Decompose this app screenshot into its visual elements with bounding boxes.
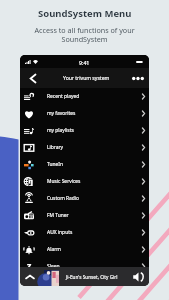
button[interactable]: Back xyxy=(24,69,42,87)
button[interactable]: Recent played xyxy=(20,88,149,105)
staticText: Custom Radio xyxy=(47,195,80,202)
staticText: my playlists xyxy=(47,127,74,134)
button[interactable]: Alarm xyxy=(20,241,149,258)
staticText: Recent played xyxy=(47,93,80,100)
staticText: SoundSystem Menu xyxy=(38,7,132,20)
staticText: Alarm xyxy=(47,246,61,253)
button[interactable]: More options xyxy=(129,69,147,87)
staticText: Library xyxy=(47,144,64,151)
button[interactable]: Expand player xyxy=(20,267,149,286)
button[interactable]: Expand player xyxy=(24,271,36,283)
staticText: Sleep xyxy=(47,263,60,270)
staticText: my favorites xyxy=(47,110,76,117)
button[interactable]: my playlists xyxy=(20,122,149,139)
button[interactable]: Music Services xyxy=(20,173,149,190)
staticText: Music Services xyxy=(47,178,81,185)
staticText: Ji-Eun's Sunset, City Girl xyxy=(66,274,118,280)
button[interactable]: my favorites xyxy=(20,105,149,122)
staticText: TuneIn xyxy=(47,161,63,168)
button[interactable]: FM Tuner xyxy=(20,207,149,224)
staticText: FM Tuner xyxy=(47,212,69,219)
button[interactable]: Custom Radio xyxy=(20,190,149,207)
button[interactable]: AUX inputs xyxy=(20,224,149,241)
staticText: AUX inputs xyxy=(47,229,73,236)
button[interactable]: Volume xyxy=(130,269,146,285)
staticText: Your trivum system xyxy=(63,75,110,82)
staticText: Access to all functions of your SoundSys… xyxy=(34,25,135,44)
button[interactable]: Z xyxy=(20,258,149,275)
staticText: Z xyxy=(27,262,32,272)
button[interactable]: TuneIn xyxy=(20,156,149,173)
staticText: 9:41 xyxy=(79,59,90,66)
button[interactable]: Library xyxy=(20,139,149,156)
